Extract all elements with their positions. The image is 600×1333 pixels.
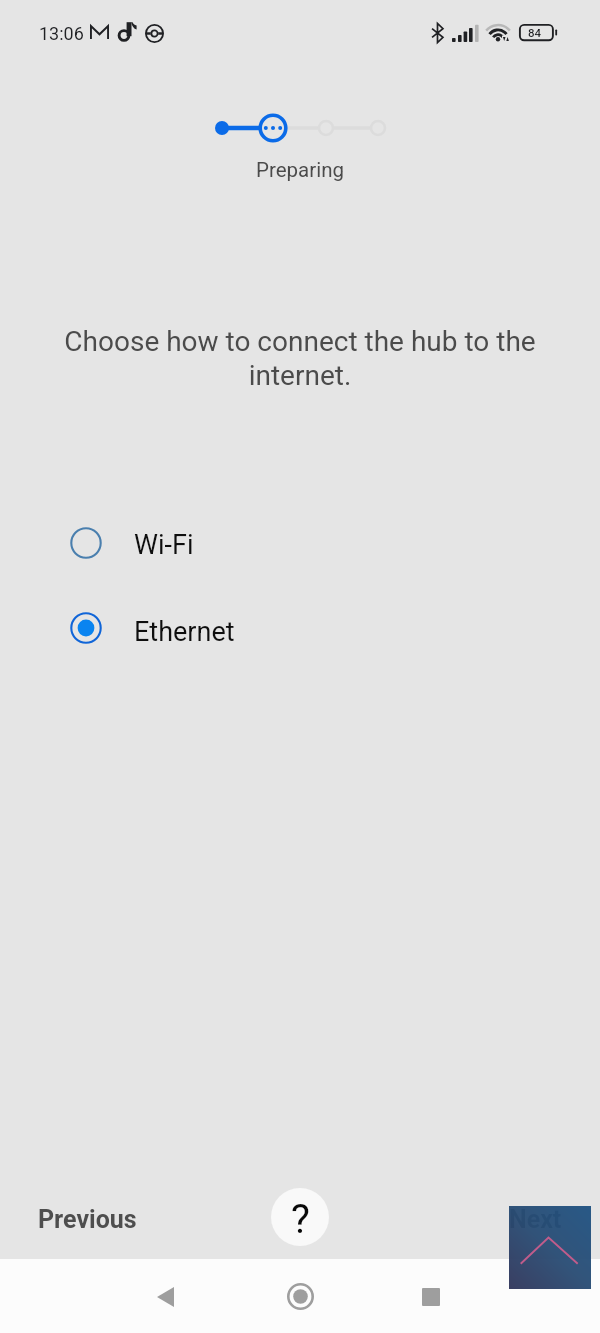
staticText: Ethernet: [134, 616, 235, 648]
button[interactable]: Ethernet: [0, 606, 600, 650]
staticText: Choose how to connect the hub to the int…: [56, 325, 544, 391]
button[interactable]: Back: [135, 1267, 195, 1327]
staticText: Previous: [38, 1205, 137, 1234]
button[interactable]: Home: [270, 1266, 330, 1326]
button[interactable]: Recents: [401, 1267, 461, 1327]
staticText: Next: [509, 1205, 562, 1234]
staticText: ?: [291, 1196, 310, 1243]
staticText: 84: [528, 26, 542, 39]
button[interactable]: Wi-Fi: [0, 521, 600, 565]
staticText: Wi-Fi: [134, 529, 194, 561]
button[interactable]: Help: [271, 1188, 329, 1246]
button[interactable]: Previous: [22, 1195, 153, 1244]
staticText: Preparing: [256, 158, 344, 182]
button[interactable]: Next: [493, 1195, 578, 1244]
staticText: 13:06: [39, 23, 84, 44]
